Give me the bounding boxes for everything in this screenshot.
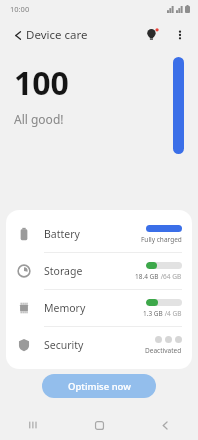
- staticText: 10:00: [10, 4, 30, 14]
- button[interactable]: Tips: [140, 23, 164, 47]
- button[interactable]: Battery: [6, 216, 192, 252]
- staticText: /64 GB: [159, 272, 182, 281]
- staticText: 18.4 GB: [135, 272, 159, 281]
- staticText: 100: [14, 61, 69, 105]
- button[interactable]: Back: [6, 23, 30, 47]
- button[interactable]: Home: [66, 410, 132, 440]
- staticText: Battery: [44, 227, 80, 241]
- staticText: Security: [44, 338, 84, 352]
- button[interactable]: More options: [168, 23, 192, 47]
- button[interactable]: Optimise now: [42, 374, 156, 398]
- button[interactable]: Back: [132, 410, 198, 440]
- staticText: Deactivated: [145, 346, 182, 355]
- staticText: Optimise now: [68, 380, 131, 393]
- staticText: Device care: [26, 27, 88, 43]
- button[interactable]: Memory: [6, 290, 192, 326]
- staticText: All good!: [14, 111, 64, 127]
- button[interactable]: Storage: [6, 253, 192, 289]
- staticText: Storage: [44, 264, 83, 278]
- button[interactable]: Recent apps: [0, 410, 66, 440]
- staticText: 1.3 GB: [143, 309, 163, 318]
- button[interactable]: Security: [6, 327, 192, 363]
- staticText: Memory: [44, 301, 86, 315]
- staticText: Fully charged: [141, 235, 182, 244]
- staticText: /4 GB: [163, 309, 182, 318]
